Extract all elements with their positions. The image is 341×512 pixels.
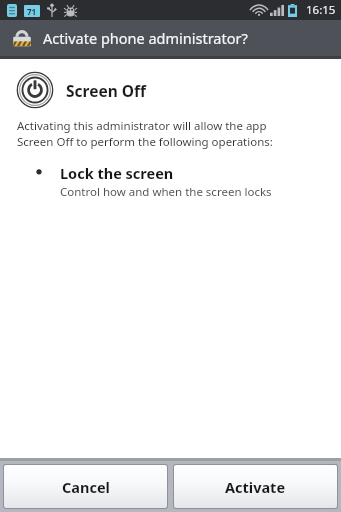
staticText: Screen Off (66, 80, 146, 101)
staticText: Activate phone administrator? (43, 28, 248, 48)
staticText: Screen Off to perform the following oper… (17, 134, 273, 150)
staticText: Activating this administrator will allow… (17, 118, 267, 134)
other: Device administrator (11, 27, 33, 49)
staticText: 71 (27, 6, 37, 17)
staticText: Cancel (62, 477, 110, 497)
staticText: Lock the screen (60, 163, 174, 183)
staticText: 16:15 (306, 2, 336, 18)
staticText: Control how and when the screen locks (60, 184, 272, 200)
button[interactable]: Cancel (4, 465, 167, 508)
staticText: Activate (225, 477, 286, 497)
button[interactable]: Activate (174, 465, 337, 508)
